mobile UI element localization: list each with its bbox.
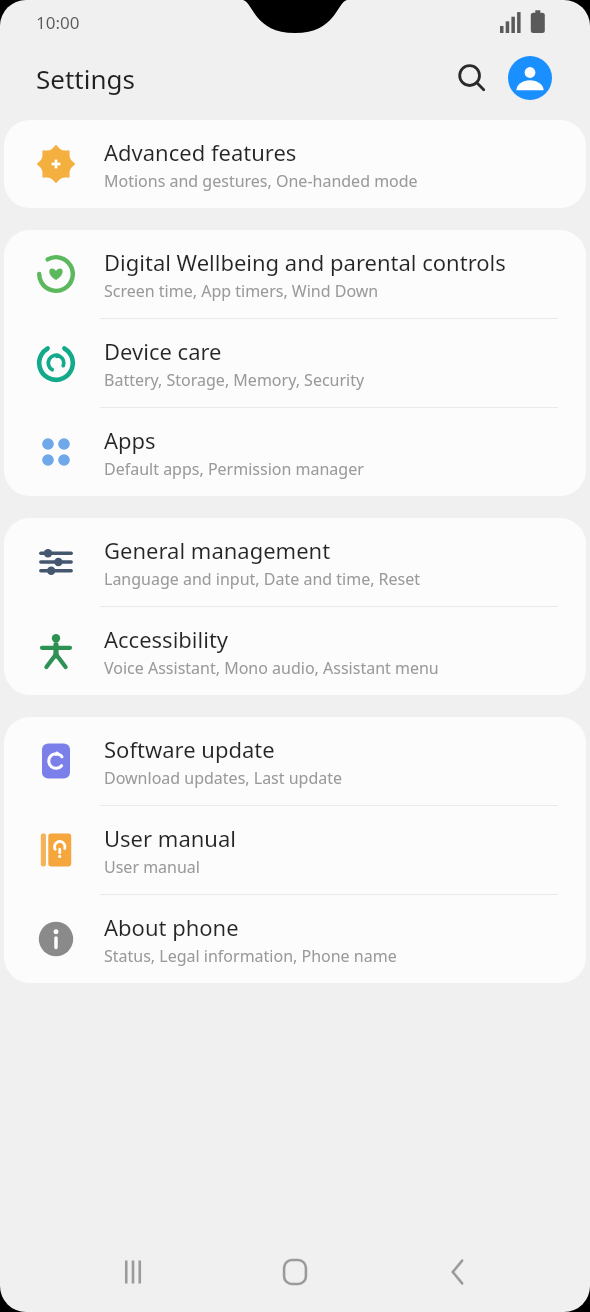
staticText: Motions and gestures, One-handed mode [104, 170, 418, 192]
staticText: General management [104, 535, 331, 565]
staticText: Apps [104, 425, 156, 455]
button[interactable]: About phone [4, 895, 586, 983]
button[interactable]: Account [506, 54, 554, 102]
button[interactable]: Digital Wellbeing and parental controls [4, 230, 586, 318]
staticText: Digital Wellbeing and parental controls [104, 247, 506, 277]
button[interactable]: Apps [4, 408, 586, 496]
staticText: Language and input, Date and time, Reset [104, 568, 421, 590]
button[interactable]: Accessibility [4, 607, 586, 695]
button[interactable]: Back [428, 1242, 488, 1302]
button[interactable]: Home [265, 1242, 325, 1302]
staticText: Software update [104, 734, 275, 764]
staticText: Accessibility [104, 624, 229, 654]
staticText: Device care [104, 336, 222, 366]
button[interactable]: Advanced features [4, 120, 586, 208]
staticText: Voice Assistant, Mono audio, Assistant m… [104, 657, 439, 679]
button[interactable]: Search [448, 54, 496, 102]
staticText: Default apps, Permission manager [104, 458, 364, 480]
button[interactable]: Device care [4, 319, 586, 407]
button[interactable]: Software update [4, 717, 586, 805]
staticText: User manual [104, 856, 200, 878]
staticText: Status, Legal information, Phone name [104, 945, 397, 967]
staticText: Battery, Storage, Memory, Security [104, 369, 365, 391]
button[interactable]: User manual [4, 806, 586, 894]
staticText: Advanced features [104, 137, 297, 167]
button[interactable]: Recents [103, 1242, 163, 1302]
button[interactable]: General management [4, 518, 586, 606]
staticText: About phone [104, 912, 239, 942]
staticText: User manual [104, 823, 236, 853]
staticText: 10:00 [36, 11, 80, 34]
staticText: Settings [36, 61, 135, 96]
staticText: Screen time, App timers, Wind Down [104, 280, 379, 302]
staticText: Download updates, Last update [104, 767, 343, 789]
